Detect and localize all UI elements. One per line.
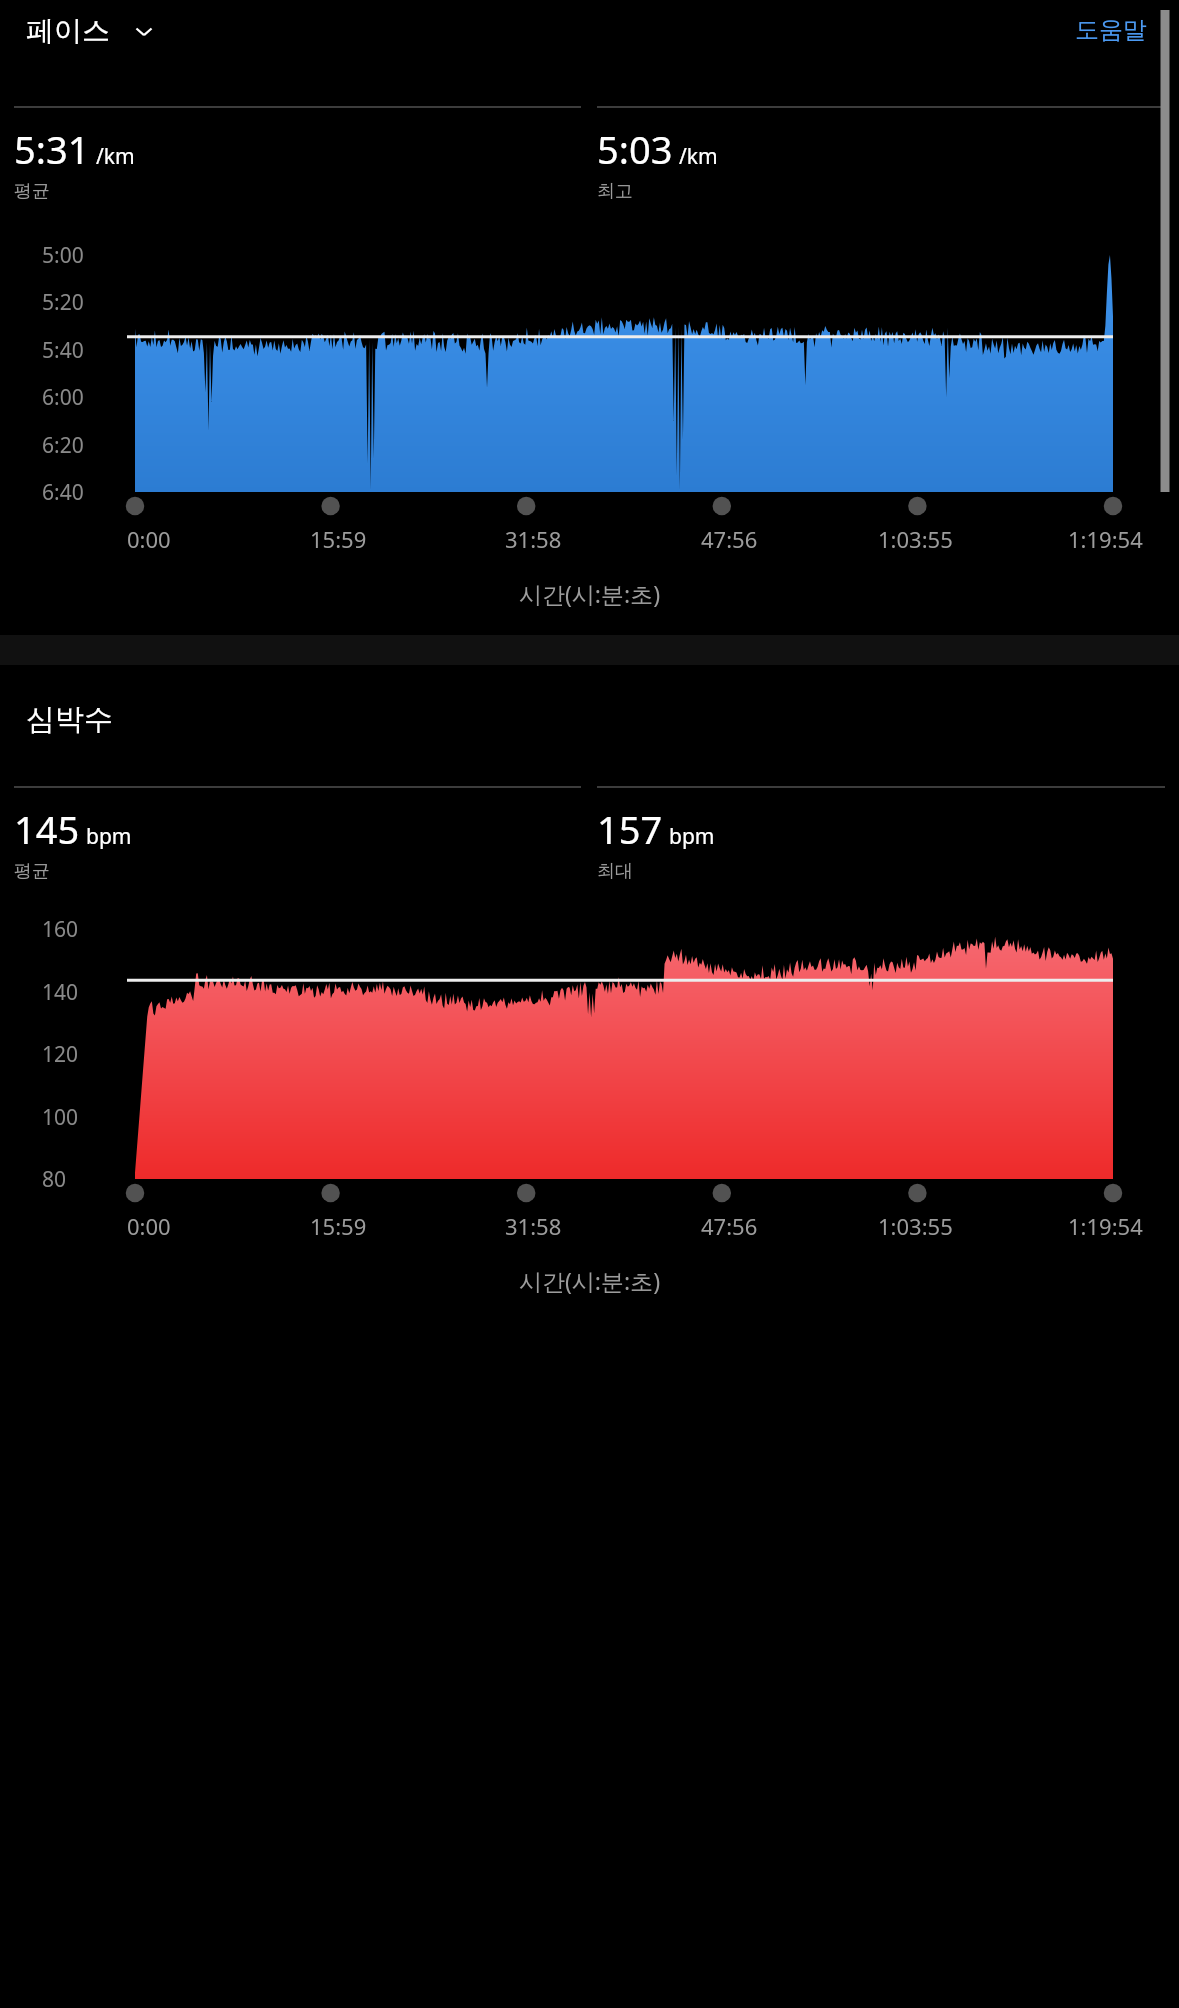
staticText: 평균 (14, 860, 50, 883)
staticText: 평균 (14, 180, 50, 203)
staticText: 0:00 (127, 524, 171, 554)
staticText: 1:19:54 (1068, 1211, 1143, 1241)
staticText: 80 (42, 1165, 67, 1194)
staticText: 0:00 (127, 1211, 171, 1241)
staticText: 5:31 (14, 123, 90, 175)
staticText: 15:59 (310, 524, 367, 554)
button[interactable]: 도움말 (1075, 15, 1147, 45)
button[interactable]: 페이스 (26, 13, 158, 48)
other: Change metric (130, 17, 158, 45)
staticText: 6:40 (42, 478, 84, 507)
staticText: 47:56 (701, 1211, 758, 1241)
staticText: 시간(시:분:초) (0, 1265, 1179, 1296)
staticText: 시간(시:분:초) (0, 578, 1179, 609)
staticText: 140 (42, 978, 79, 1007)
staticText: 15:59 (310, 1211, 367, 1241)
staticText: 1:19:54 (1068, 524, 1143, 554)
staticText: 6:20 (42, 431, 84, 460)
staticText: 5:40 (42, 336, 84, 365)
staticText: 145 (14, 803, 80, 855)
staticText: 6:00 (42, 383, 84, 412)
staticText: 47:56 (701, 524, 758, 554)
staticText: 1:03:55 (878, 524, 953, 554)
staticText: 120 (42, 1040, 79, 1069)
staticText: /km (96, 142, 135, 171)
staticText: 157 (597, 803, 663, 855)
staticText: 100 (42, 1103, 79, 1132)
staticText: 5:20 (42, 288, 84, 317)
staticText: 160 (42, 915, 79, 944)
staticText: 5:00 (42, 241, 84, 270)
staticText: bpm (86, 822, 132, 851)
staticText: bpm (669, 822, 715, 851)
staticText: 도움말 (1075, 15, 1147, 45)
staticText: 최고 (597, 180, 633, 203)
staticText: 페이스 (26, 13, 110, 48)
staticText: 31:58 (505, 1211, 562, 1241)
staticText: 5:03 (597, 123, 673, 175)
staticText: /km (679, 142, 718, 171)
staticText: 최대 (597, 860, 633, 883)
staticText: 1:03:55 (878, 1211, 953, 1241)
staticText: 31:58 (505, 524, 562, 554)
staticText: 심박수 (26, 701, 113, 738)
